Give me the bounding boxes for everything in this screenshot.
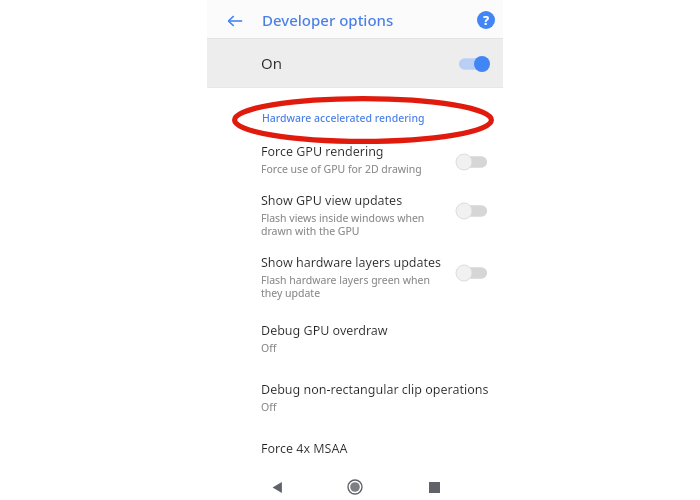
staticText: Force GPU rendering: [261, 143, 384, 160]
button[interactable]: Force 4x MSAA: [207, 440, 503, 462]
button[interactable]: Debug non-rectangular clip operations: [207, 381, 503, 414]
staticText: Off: [261, 341, 277, 355]
button[interactable]: Show hardware layers updates: [207, 254, 503, 300]
staticText: Debug non-rectangular clip operations: [261, 381, 489, 398]
staticText: Developer options: [262, 10, 394, 30]
staticText: Debug GPU overdraw: [261, 322, 388, 339]
button[interactable]: Help: [473, 7, 499, 33]
staticText: Flash hardware layers green when they up…: [261, 273, 430, 300]
button[interactable]: Back: [221, 7, 249, 35]
button[interactable]: Home: [341, 473, 369, 500]
button[interactable]: Show GPU view updates: [207, 192, 503, 238]
staticText: Off: [261, 400, 277, 414]
staticText: On: [261, 53, 282, 73]
staticText: Show hardware layers updates: [261, 254, 442, 271]
button[interactable]: Hardware accelerated rendering: [207, 108, 503, 130]
staticText: ?: [483, 12, 489, 28]
button[interactable]: On: [207, 39, 503, 87]
button[interactable]: Recent apps: [420, 473, 448, 500]
staticText: Flash views inside windows when drawn wi…: [261, 211, 425, 238]
staticText: Hardware accelerated rendering: [262, 111, 425, 125]
button[interactable]: Debug GPU overdraw: [207, 322, 503, 355]
staticText: Force use of GPU for 2D drawing: [261, 162, 422, 176]
staticText: Show GPU view updates: [261, 192, 403, 209]
button[interactable]: Force GPU rendering: [207, 143, 503, 176]
button[interactable]: Back: [263, 473, 291, 500]
staticText: Force 4x MSAA: [261, 440, 348, 457]
